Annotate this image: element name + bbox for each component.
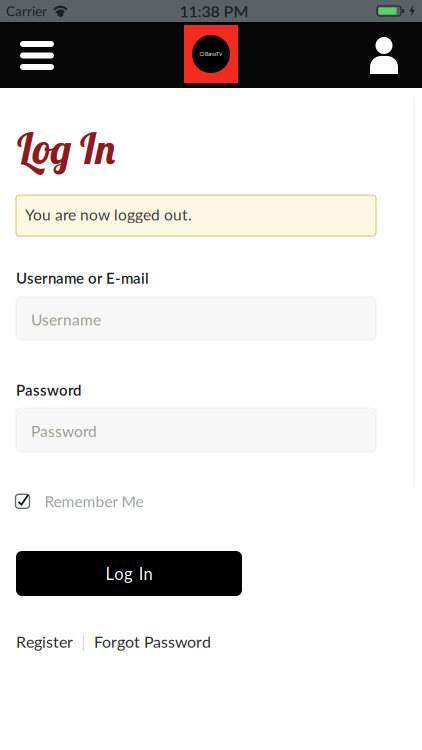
staticText: Username or E-mail <box>16 269 149 287</box>
button[interactable]: Account <box>370 37 398 74</box>
staticText: Forgot Password <box>94 632 211 651</box>
staticText: BamaTV <box>205 51 222 57</box>
staticText: 11:38 PM <box>179 1 248 21</box>
secureTextField[interactable]: Password <box>31 422 376 440</box>
button[interactable]: Menu <box>20 41 54 70</box>
button[interactable]: Remember Me <box>15 492 143 511</box>
button[interactable]: Forgot Password <box>94 632 211 651</box>
button[interactable]: Log In <box>16 551 242 596</box>
staticText: Log In <box>105 564 152 583</box>
staticText: | <box>81 633 85 651</box>
staticText: Log In <box>17 122 115 174</box>
textField[interactable]: Username <box>31 310 376 329</box>
staticText: Remember Me <box>44 492 143 511</box>
staticText: Username <box>31 310 101 329</box>
button[interactable]: Home <box>184 25 238 83</box>
button[interactable]: Register <box>16 632 73 651</box>
staticText: Password <box>16 381 81 399</box>
staticText: Register <box>16 632 73 651</box>
staticText: Carrier <box>6 3 47 19</box>
staticText: You are now logged out. <box>25 205 192 224</box>
staticText: Password <box>31 422 97 440</box>
